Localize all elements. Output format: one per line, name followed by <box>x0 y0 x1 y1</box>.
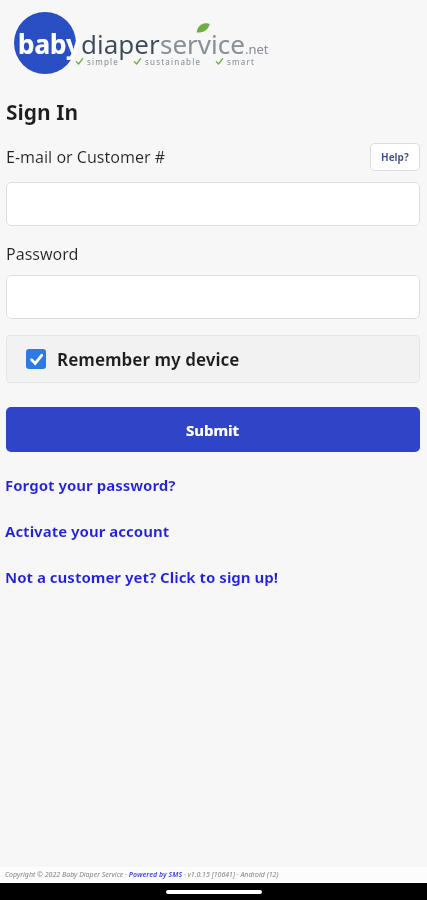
staticText: .net <box>245 40 269 58</box>
staticText: baby <box>18 26 81 61</box>
staticText: Activate your account <box>5 521 170 541</box>
staticText: diaper <box>81 26 160 61</box>
staticText: Submit <box>186 420 240 440</box>
staticText: Remember my device <box>57 348 240 371</box>
staticText: Sign In <box>6 98 79 127</box>
button[interactable]: Submit <box>6 407 420 452</box>
staticText: simple <box>87 56 120 67</box>
button[interactable]: Remember my device <box>6 335 420 383</box>
button[interactable]: Not a customer yet? Click to sign up! <box>0 565 427 589</box>
staticText: Password <box>6 243 79 265</box>
button[interactable]: Help? <box>370 143 420 171</box>
staticText: Forgot your password? <box>5 475 176 495</box>
button[interactable] <box>6 182 420 226</box>
staticText: Copyright © 2022 Baby Diaper Service · P… <box>5 870 279 880</box>
button[interactable]: Activate your account <box>0 519 427 543</box>
staticText: Help? <box>381 150 409 164</box>
button[interactable] <box>6 275 420 319</box>
button[interactable]: Forgot your password? <box>0 473 427 497</box>
staticText: E-mail or Customer # <box>6 146 166 168</box>
staticText: smart <box>227 56 255 67</box>
staticText: service <box>160 26 245 61</box>
staticText: Not a customer yet? Click to sign up! <box>5 567 278 587</box>
staticText: sustainable <box>145 56 202 67</box>
